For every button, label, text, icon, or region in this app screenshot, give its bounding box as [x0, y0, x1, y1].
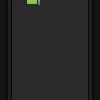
button[interactable]: Active indicator	[12, 0, 88, 100]
button[interactable]: Active indicator	[27, 0, 37, 4]
button[interactable]: Marker	[38, 0, 40, 5]
